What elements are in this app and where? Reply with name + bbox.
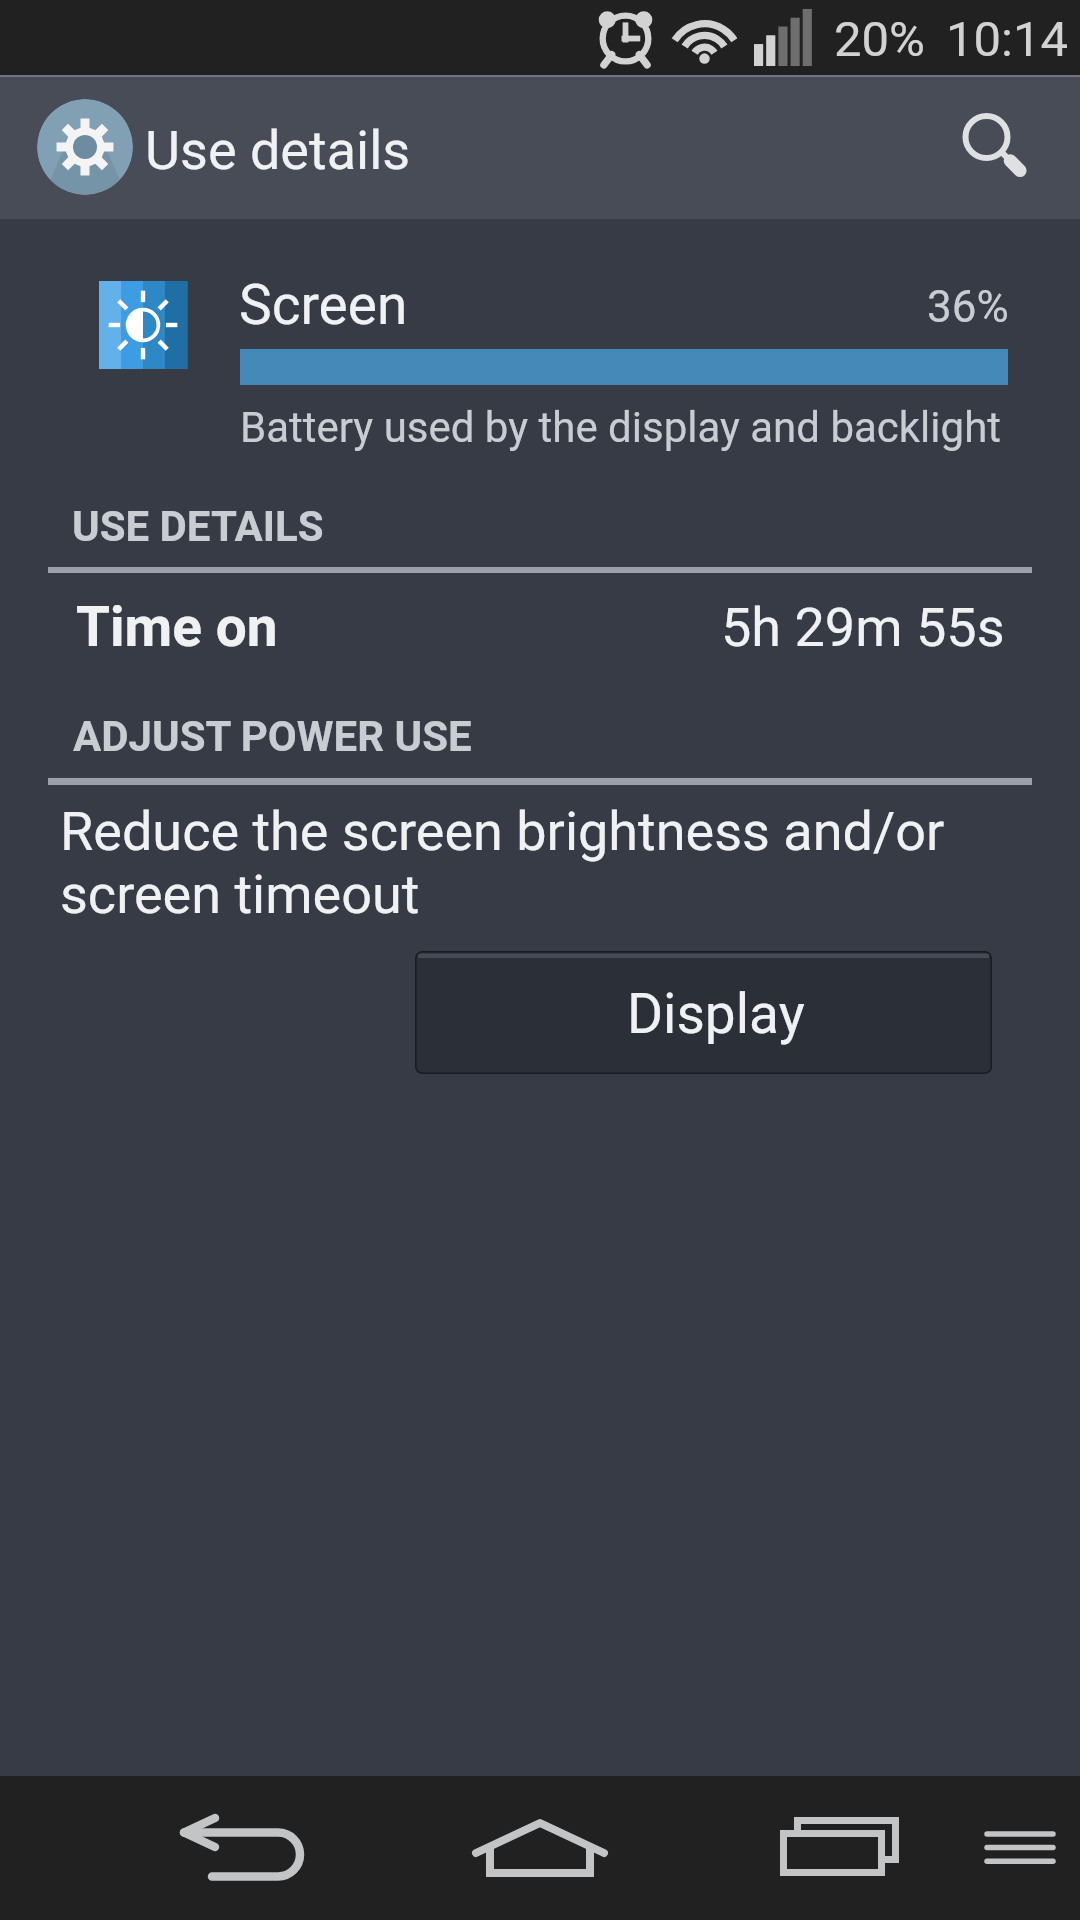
staticText: Time on (76, 595, 278, 659)
staticText: Screen (239, 273, 408, 337)
button[interactable]: Recent apps (710, 1776, 960, 1920)
staticText: 10:14 (946, 11, 1069, 68)
button[interactable]: Search (946, 99, 1046, 199)
button[interactable]: Screen (0, 245, 1080, 470)
staticText: USE DETAILS (72, 502, 324, 551)
button[interactable]: Display (415, 951, 992, 1074)
staticText: Reduce the screen brightness and/or scre… (60, 800, 960, 926)
staticText: Battery used by the display and backligh… (240, 403, 1002, 452)
button[interactable]: Home (400, 1776, 680, 1920)
staticText: ADJUST POWER USE (73, 712, 472, 761)
staticText: 36% (927, 281, 1009, 333)
button[interactable]: Settings (37, 99, 133, 195)
staticText: Display (627, 982, 805, 1046)
staticText: Use details (145, 119, 411, 182)
staticText: 5h 29m 55s (721, 596, 1005, 659)
button[interactable]: Time on (0, 580, 1080, 675)
staticText: 20% (834, 11, 925, 68)
button[interactable]: Menu (960, 1776, 1080, 1920)
button[interactable]: Back (90, 1776, 390, 1920)
